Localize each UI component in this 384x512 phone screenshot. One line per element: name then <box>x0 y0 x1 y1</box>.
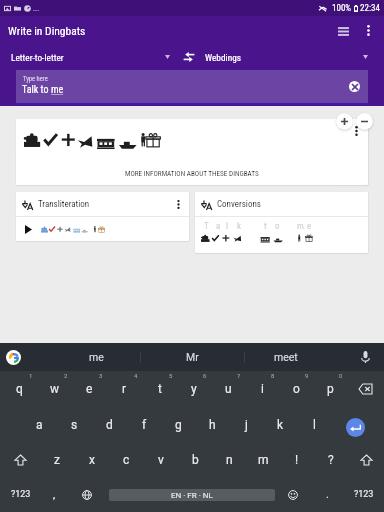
button[interactable]: e <box>72 371 107 407</box>
button[interactable]: Change language <box>68 477 106 512</box>
button[interactable]: n <box>212 442 246 477</box>
button[interactable]: More options <box>356 18 380 42</box>
button[interactable]: Conversions <box>195 192 368 253</box>
staticText: 2 <box>64 372 68 379</box>
staticText: k <box>277 418 284 432</box>
button[interactable]: d <box>92 407 127 442</box>
staticText: 100% <box>332 3 352 14</box>
staticText: Talk to <box>22 84 51 96</box>
button[interactable]: i <box>245 371 279 407</box>
button[interactable]: o <box>279 371 313 407</box>
button[interactable]: q <box>2 371 37 407</box>
button[interactable]: j <box>229 407 263 442</box>
button[interactable]: u <box>211 371 245 407</box>
button[interactable]: Voice input <box>326 343 384 371</box>
staticText: ?123 <box>11 489 31 500</box>
button[interactable]: Shift <box>348 442 384 477</box>
staticText: 4 <box>134 372 138 379</box>
button[interactable]: Decrease size <box>356 113 373 130</box>
button[interactable]: s <box>57 407 92 442</box>
button[interactable]: a <box>22 407 57 442</box>
button[interactable]: Transliteration options <box>170 196 186 212</box>
button[interactable]: EN · FR · NL <box>106 477 278 512</box>
staticText: ? <box>328 453 334 467</box>
button[interactable]: me <box>52 343 140 371</box>
button[interactable]: Transliteration <box>16 192 189 241</box>
staticText: m <box>297 221 304 232</box>
staticText: 9 <box>305 372 309 379</box>
staticText: Type here <box>23 75 48 83</box>
button[interactable]: Swap languages <box>178 46 200 68</box>
staticText: e <box>86 382 93 396</box>
button[interactable]: Backspace <box>347 371 384 407</box>
staticText: 0 <box>339 372 343 379</box>
button[interactable]: y <box>177 371 211 407</box>
button[interactable]: x <box>74 442 109 477</box>
staticText: T <box>204 221 209 232</box>
staticText: MORE INFORMATION ABOUT THESE DINGBATS <box>125 169 259 177</box>
staticText: Transliteration <box>38 199 90 210</box>
staticText: 1 <box>29 372 33 379</box>
button[interactable]: MORE INFORMATION ABOUT THESE DINGBATS <box>16 119 368 185</box>
staticText: y <box>191 382 197 396</box>
button[interactable]: Clear text <box>349 81 360 92</box>
staticText: f <box>142 418 147 432</box>
button[interactable]: m <box>246 442 280 477</box>
button[interactable]: t <box>142 371 177 407</box>
button[interactable]: ?123 <box>0 477 41 512</box>
staticText: j <box>245 418 248 432</box>
button[interactable]: ?123 <box>346 477 382 512</box>
staticText: x <box>89 453 95 467</box>
button[interactable]: v <box>144 442 178 477</box>
button[interactable]: Enter <box>331 407 384 442</box>
staticText: 3 <box>99 372 103 379</box>
button[interactable]: c <box>109 442 144 477</box>
staticText: Letter-to-letter <box>11 52 64 63</box>
staticText: q <box>16 382 23 396</box>
button[interactable]: Google <box>0 343 52 371</box>
staticText: o <box>293 382 300 396</box>
staticText: me <box>51 84 64 96</box>
button[interactable]: meet <box>245 343 326 371</box>
staticText: c <box>123 453 130 467</box>
staticText: ... <box>33 4 40 13</box>
button[interactable]: w <box>37 371 72 407</box>
staticText: z <box>54 453 60 467</box>
staticText: u <box>225 382 232 396</box>
staticText: h <box>209 418 216 432</box>
button[interactable]: Emoji <box>278 477 308 512</box>
staticText: ! <box>295 453 299 467</box>
button[interactable]: Period <box>308 477 346 512</box>
button[interactable]: Mr <box>141 343 244 371</box>
staticText: 7 <box>237 372 241 379</box>
button[interactable]: p <box>313 371 347 407</box>
button[interactable]: ? <box>314 442 348 477</box>
button[interactable]: Shift <box>2 442 39 477</box>
button[interactable]: Card options <box>348 123 364 139</box>
button[interactable]: Webdings <box>200 44 384 70</box>
staticText: g <box>175 418 182 432</box>
button[interactable]: Increase size <box>336 113 353 130</box>
staticText: 5 <box>169 372 173 379</box>
button[interactable]: h <box>195 407 229 442</box>
staticText: , <box>53 488 56 501</box>
button[interactable]: Type here <box>16 70 368 103</box>
button[interactable]: l <box>297 407 331 442</box>
staticText: meet <box>274 351 298 363</box>
button[interactable]: Comma <box>41 477 68 512</box>
staticText: t <box>158 382 162 396</box>
button[interactable]: ! <box>280 442 314 477</box>
staticText: Webdings <box>205 52 241 63</box>
staticText: w <box>50 382 60 396</box>
staticText: t <box>264 221 267 232</box>
staticText: b <box>192 453 199 467</box>
staticText: k <box>237 221 242 232</box>
button[interactable]: f <box>127 407 161 442</box>
button[interactable]: r <box>107 371 142 407</box>
button[interactable]: g <box>161 407 195 442</box>
button[interactable]: z <box>39 442 74 477</box>
button[interactable]: b <box>178 442 212 477</box>
button[interactable]: k <box>263 407 297 442</box>
button[interactable]: Letter-to-letter <box>0 44 178 70</box>
button[interactable]: Dingbat list <box>330 17 356 43</box>
